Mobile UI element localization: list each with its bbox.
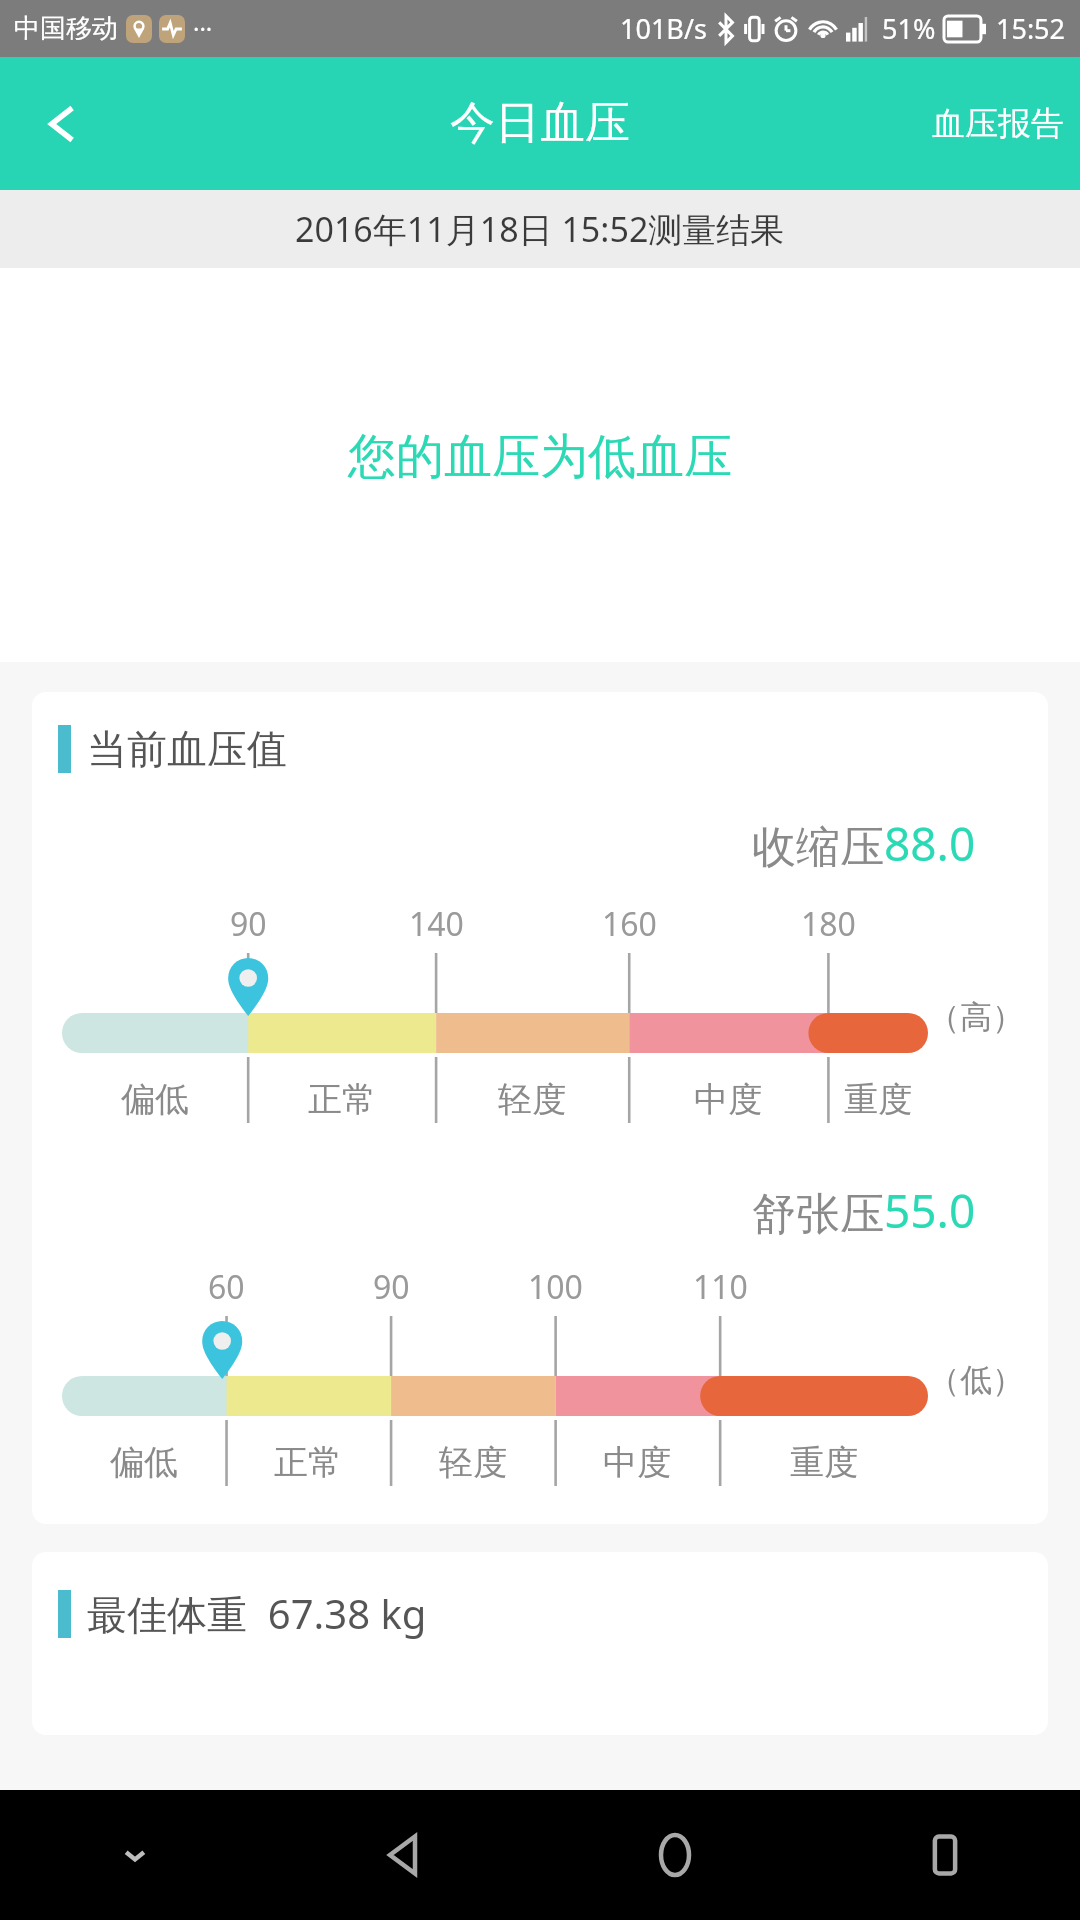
staticText: （低）: [928, 1360, 1024, 1400]
staticText: 轻度: [439, 1441, 507, 1484]
staticText: 中国移动: [14, 12, 118, 45]
staticText: 您的血压为低血压: [348, 427, 732, 487]
staticText: 100: [528, 1265, 583, 1309]
staticText: 60: [208, 1265, 245, 1309]
staticText: 最佳体重 67.38 kg: [87, 1586, 427, 1641]
staticText: 血压报告: [932, 103, 1064, 145]
staticText: 101B/s: [620, 10, 707, 47]
staticText: 正常: [274, 1441, 342, 1484]
staticText: 重度: [790, 1441, 858, 1484]
button[interactable]: Recents: [810, 1790, 1080, 1920]
staticText: 偏低: [121, 1078, 189, 1121]
staticText: 2016年11月18日 15:52测量结果: [295, 206, 785, 252]
staticText: 轻度: [498, 1078, 566, 1121]
staticText: 今日血压: [450, 95, 630, 152]
staticText: 180: [801, 902, 856, 946]
staticText: 55.0: [884, 1179, 976, 1242]
button[interactable]: Hide keyboard: [0, 1790, 270, 1920]
staticText: 舒张压: [752, 1187, 884, 1242]
staticText: （高）: [928, 997, 1024, 1037]
staticText: 中度: [694, 1078, 762, 1121]
staticText: 88.0: [884, 812, 976, 875]
staticText: 重度: [844, 1078, 912, 1121]
staticText: 160: [602, 902, 657, 946]
staticText: 偏低: [110, 1441, 178, 1484]
button[interactable]: Back: [270, 1790, 540, 1920]
button[interactable]: Home: [540, 1790, 810, 1920]
staticText: 中度: [603, 1441, 671, 1484]
button[interactable]: Back: [22, 86, 98, 162]
staticText: 110: [693, 1265, 748, 1309]
staticText: 90: [373, 1265, 410, 1309]
button[interactable]: 当前血压值: [32, 692, 1048, 1524]
button[interactable]: 血压报告: [916, 83, 1080, 165]
staticText: 正常: [308, 1078, 376, 1121]
staticText: 90: [230, 902, 267, 946]
staticText: 51%: [882, 10, 936, 47]
staticText: 收缩压: [752, 820, 884, 875]
staticText: 当前血压值: [87, 724, 287, 774]
staticText: 140: [409, 902, 464, 946]
button[interactable]: 最佳体重 67.38 kg: [32, 1552, 1048, 1735]
staticText: 15:52: [996, 10, 1066, 47]
staticText: ···: [193, 12, 213, 45]
